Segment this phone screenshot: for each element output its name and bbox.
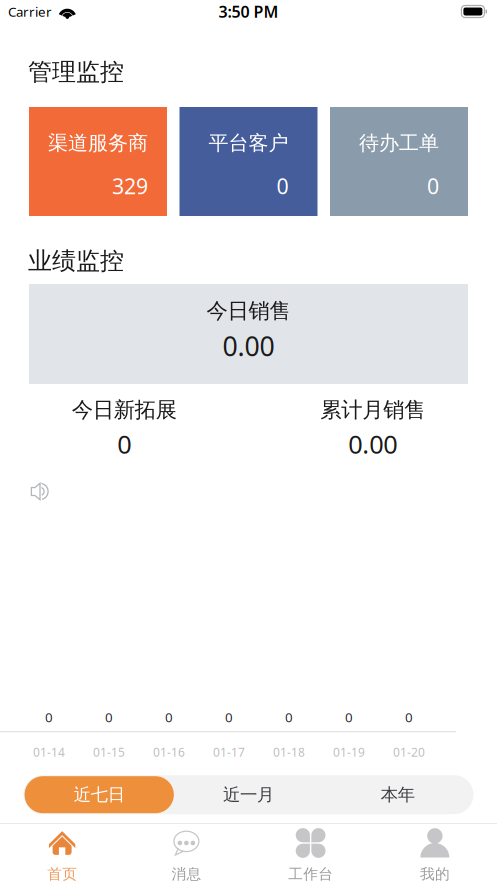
staticText: 待办工单 [359,131,439,155]
staticText: 0.00 [348,427,397,461]
staticText: 01-14 [33,744,65,760]
staticText: 业绩监控 [28,246,124,276]
button[interactable]: 渠道服务商 [29,107,167,216]
staticText: 01-19 [333,744,365,760]
staticText: 0 [276,172,288,200]
staticText: 0 [405,708,413,726]
staticText: 0 [285,708,293,726]
staticText: 消息 [171,865,201,883]
button[interactable]: 首页 [0,824,124,883]
button[interactable]: 我的 [373,824,497,883]
staticText: 01-15 [93,744,125,760]
staticText: 01-16 [153,744,185,760]
staticText: 工作台 [288,865,333,883]
staticText: 0 [105,708,113,726]
staticText: 近七日 [74,784,125,805]
button[interactable]: 本年 [323,776,472,813]
staticText: 01-18 [273,744,305,760]
staticText: 0.00 [222,328,274,364]
staticText: 本年 [381,784,415,805]
staticText: 近一月 [223,784,274,805]
staticText: 0 [117,427,131,461]
staticText: 今日销售 [206,298,290,324]
staticText: 平台客户 [208,131,288,155]
staticText: 01-20 [393,744,425,760]
button[interactable]: Voice broadcast [23,474,57,508]
button[interactable]: 工作台 [248,824,373,883]
staticText: 0 [165,708,173,726]
staticText: 管理监控 [28,57,124,87]
staticText: 0 [345,708,353,726]
button[interactable]: 消息 [124,824,248,883]
staticText: 0 [225,708,233,726]
staticText: Carrier [8,3,52,20]
staticText: 今日新拓展 [72,397,177,423]
button[interactable]: 近七日 [24,776,174,813]
staticText: 3:50 PM [218,1,278,22]
staticText: 首页 [47,865,77,883]
staticText: 0 [45,708,53,726]
staticText: 329 [112,172,148,200]
button[interactable]: 近一月 [174,776,323,813]
staticText: 0 [427,172,439,200]
staticText: 我的 [420,865,450,883]
staticText: 累计月销售 [320,397,425,423]
button[interactable]: 待办工单 [330,107,468,216]
staticText: 渠道服务商 [48,131,148,155]
staticText: 01-17 [213,744,245,760]
button[interactable]: 平台客户 [179,107,317,216]
